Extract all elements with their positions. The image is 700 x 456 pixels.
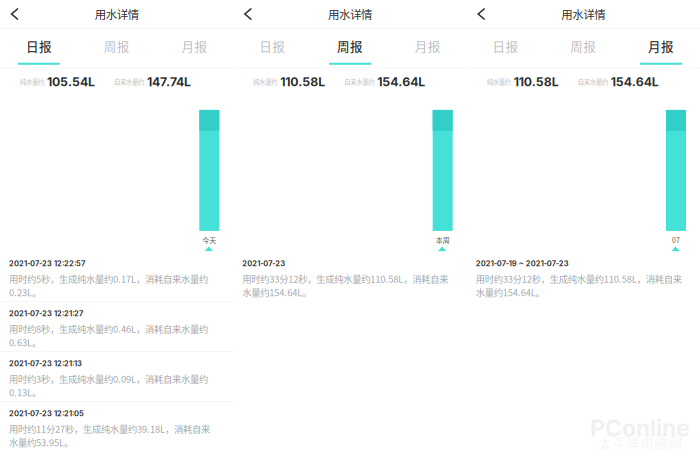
staticText: 自来水量约 bbox=[344, 77, 374, 86]
staticText: 147.74L bbox=[147, 74, 191, 89]
staticText: 用水详情 bbox=[95, 6, 139, 22]
staticText: 用时约33分12秒，生成纯水量约110.58L，消耗自来水量约154.64L。 bbox=[476, 272, 682, 299]
staticText: 周报 bbox=[570, 37, 596, 55]
staticText: 用水详情 bbox=[561, 6, 605, 22]
button[interactable]: 周报 bbox=[311, 29, 389, 68]
button[interactable]: Back bbox=[0, 0, 28, 28]
staticText: 用时约33分12秒，生成纯水量约110.58L，消耗自来水量约154.64L。 bbox=[242, 272, 448, 299]
staticText: 2021-07-23 12:21:13 bbox=[9, 359, 82, 368]
button[interactable]: 2021-07-19 ~ 2021-07-23 bbox=[467, 251, 700, 301]
staticText: 2021-07-23 12:21:27 bbox=[9, 309, 83, 318]
staticText: 154.64L bbox=[377, 74, 425, 89]
staticText: 本周 bbox=[436, 235, 450, 245]
staticText: 110.58L bbox=[514, 74, 559, 89]
staticText: 用时约8秒，生成纯水量约0.46L，消耗自来水量约0.63L。 bbox=[9, 322, 208, 349]
staticText: 纯水量约 bbox=[487, 77, 511, 86]
staticText: 105.54L bbox=[47, 74, 95, 89]
staticText: 用时约3秒，生成纯水量约0.09L，消耗自来水量约0.13L。 bbox=[9, 372, 208, 399]
button[interactable]: 2021-07-23 12:21:27 bbox=[0, 301, 233, 351]
staticText: 07 bbox=[672, 235, 680, 245]
button[interactable]: 2021-07-23 bbox=[233, 251, 467, 301]
staticText: 用水详情 bbox=[328, 6, 372, 22]
staticText: 太平洋电脑网 bbox=[598, 432, 682, 453]
staticText: 2021-07-23 12:22:57 bbox=[9, 259, 85, 268]
staticText: 周报 bbox=[337, 37, 363, 55]
staticText: 用时约5秒，生成纯水量约0.17L，消耗自来水量约0.23L。 bbox=[9, 272, 208, 299]
staticText: 日报 bbox=[259, 37, 285, 55]
staticText: 154.64L bbox=[611, 74, 659, 89]
button[interactable]: Back bbox=[233, 0, 261, 28]
button[interactable]: 日报 bbox=[0, 29, 78, 68]
button[interactable]: 周报 bbox=[78, 29, 156, 68]
staticText: 用时约11分27秒，生成纯水量约39.18L，消耗自来水量约53.95L。 bbox=[9, 422, 210, 449]
staticText: 月报 bbox=[648, 37, 674, 55]
button[interactable]: 日报 bbox=[467, 29, 544, 68]
staticText: 2021-07-23 bbox=[242, 259, 285, 268]
staticText: 自来水量约 bbox=[114, 77, 144, 86]
staticText: PConline bbox=[590, 414, 690, 442]
button[interactable]: 周报 bbox=[544, 29, 622, 68]
button[interactable]: 月报 bbox=[622, 29, 700, 68]
button[interactable]: Back bbox=[467, 0, 495, 28]
staticText: 纯水量约 bbox=[20, 77, 44, 86]
button[interactable]: 2021-07-23 12:21:13 bbox=[0, 351, 233, 401]
button[interactable]: 2021-07-23 12:21:05 bbox=[0, 401, 233, 451]
staticText: 自来水量约 bbox=[578, 77, 608, 86]
staticText: 周报 bbox=[104, 37, 130, 55]
staticText: 2021-07-23 12:21:05 bbox=[9, 409, 84, 418]
button[interactable]: 月报 bbox=[156, 29, 233, 68]
staticText: 月报 bbox=[415, 37, 441, 55]
button[interactable]: 月报 bbox=[389, 29, 467, 68]
button[interactable]: 2021-07-23 12:22:57 bbox=[0, 251, 233, 301]
staticText: 日报 bbox=[26, 37, 52, 55]
staticText: 今天 bbox=[202, 235, 216, 245]
staticText: 月报 bbox=[181, 37, 207, 55]
staticText: 110.58L bbox=[280, 74, 325, 89]
staticText: 日报 bbox=[493, 37, 519, 55]
staticText: 纯水量约 bbox=[253, 77, 277, 86]
staticText: 2021-07-19 ~ 2021-07-23 bbox=[476, 259, 569, 268]
button[interactable]: 日报 bbox=[233, 29, 311, 68]
